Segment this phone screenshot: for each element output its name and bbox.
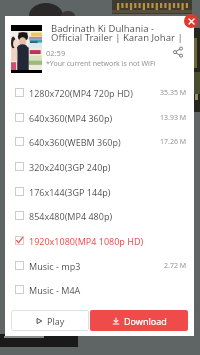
- staticText: 854x480(MP4 480p): [29, 210, 113, 222]
- staticText: 176x144(3GP 144p): [29, 186, 111, 198]
- staticText: 02:59: [46, 48, 66, 58]
- staticText: Play: [47, 315, 65, 327]
- button[interactable]: 320x240(3GP 240p): [5, 154, 194, 179]
- button[interactable]: 1280x720(MP4 720p HD): [5, 80, 194, 105]
- button[interactable]: Music - mp3: [5, 253, 194, 278]
- button[interactable]: 854x480(MP4 480p): [5, 203, 194, 228]
- staticText: 2.72 M: [164, 261, 187, 271]
- staticText: Badrinath Ki Dulhania - Official Trailer…: [51, 22, 183, 44]
- button[interactable]: Play: [11, 310, 89, 331]
- staticText: 1920x1080(MP4 1080p HD): [29, 235, 144, 247]
- staticText: Music - M4A: [29, 284, 81, 296]
- button[interactable]: 640x360(WEBM 360p): [5, 129, 194, 154]
- staticText: 17.26 M: [160, 137, 187, 147]
- button[interactable]: 176x144(3GP 144p): [5, 179, 194, 204]
- button[interactable]: 1920x1080(MP4 1080p HD): [5, 228, 194, 253]
- button[interactable]: Close: [184, 14, 198, 28]
- staticText: 640x360(WEBM 360p): [29, 136, 121, 148]
- staticText: 1280x720(MP4 720p HD): [29, 87, 133, 99]
- staticText: 13.93 M: [160, 113, 187, 123]
- button[interactable]: Share: [170, 44, 186, 60]
- staticText: 640x360(MP4 360p): [29, 112, 113, 124]
- staticText: Music - mp3: [29, 260, 81, 272]
- button[interactable]: Download: [90, 310, 188, 331]
- staticText: Download: [124, 315, 167, 327]
- staticText: 320x240(3GP 240p): [29, 161, 111, 173]
- staticText: 35.35 M: [160, 88, 187, 98]
- button[interactable]: Music - M4A: [5, 277, 194, 302]
- button[interactable]: 640x360(MP4 360p): [5, 105, 194, 130]
- staticText: *Your current network is not WiFi: [46, 59, 156, 69]
